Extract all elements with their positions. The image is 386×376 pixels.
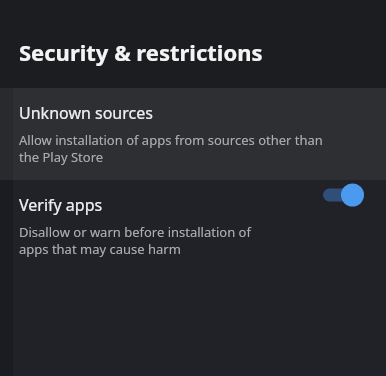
staticText: Unknown sources bbox=[19, 102, 153, 124]
button[interactable]: Verify apps bbox=[0, 180, 386, 376]
button[interactable]: Unknown sources bbox=[0, 88, 386, 180]
button[interactable]: Verify apps, on bbox=[322, 180, 386, 376]
staticText: Security & restrictions bbox=[19, 37, 263, 67]
staticText: Disallow or warn before installation of … bbox=[19, 223, 282, 258]
staticText: Allow installation of apps from sources … bbox=[19, 131, 334, 166]
staticText: Verify apps bbox=[19, 194, 103, 216]
